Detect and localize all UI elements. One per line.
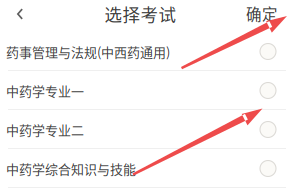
staticText: 中药学专业二 — [6, 120, 84, 139]
staticText: 中药学综合知识与技能 — [6, 159, 136, 178]
button[interactable]: 确定 — [236, 0, 288, 32]
button[interactable]: Back — [0, 0, 40, 32]
staticText: 药事管理与法规(中西药通用) — [6, 42, 170, 61]
button[interactable]: 中药学综合知识与技能 — [0, 149, 297, 188]
staticText: 确定 — [246, 2, 278, 25]
button[interactable]: 中药学专业二 — [0, 110, 297, 149]
staticText: 选择考试 — [104, 1, 176, 26]
staticText: 中药学专业一 — [6, 81, 84, 100]
button[interactable]: 药事管理与法规(中西药通用) — [0, 32, 297, 71]
button[interactable]: 中药学专业一 — [0, 71, 297, 110]
